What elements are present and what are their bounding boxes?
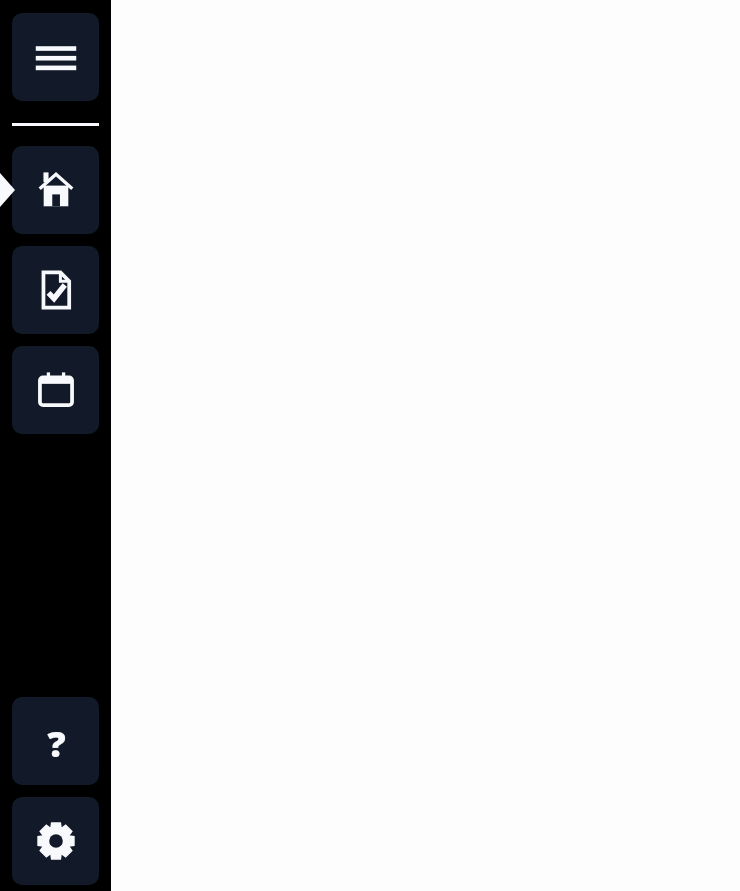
button[interactable]: Calendar [12, 346, 99, 434]
button[interactable]: Tasks [12, 246, 99, 334]
button[interactable]: Home [12, 146, 99, 234]
button[interactable]: Settings [12, 797, 99, 885]
staticText: ? [47, 719, 66, 763]
button[interactable]: Menu [12, 13, 99, 101]
button[interactable]: Help [12, 697, 99, 785]
